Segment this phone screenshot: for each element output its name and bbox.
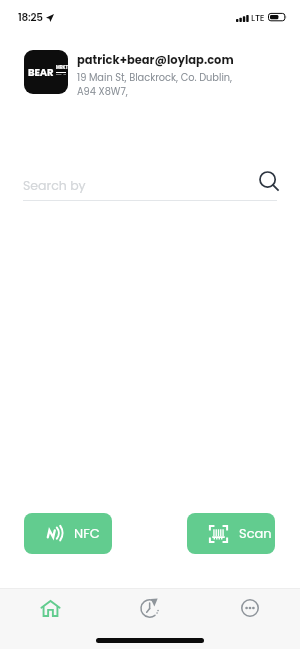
button[interactable]: Home	[28, 589, 72, 627]
staticText: patrick+bear@loylap.com	[77, 52, 234, 68]
staticText: BEAR	[28, 65, 54, 79]
button[interactable]: NFC	[24, 513, 112, 554]
staticText: NFC	[74, 524, 100, 542]
staticText: Scan	[239, 524, 272, 542]
staticText: LTE	[251, 12, 265, 25]
button[interactable]: History	[128, 589, 172, 627]
button[interactable]: Search	[257, 169, 281, 193]
button[interactable]: More options	[228, 589, 272, 627]
staticText: 19 Main St, Blackrock, Co. Dublin, A94 X…	[77, 71, 233, 98]
staticText: Search by	[23, 177, 86, 194]
staticText: 18:25	[18, 10, 43, 25]
staticText: MRKT	[56, 65, 68, 71]
button[interactable]: Scan	[187, 513, 275, 554]
